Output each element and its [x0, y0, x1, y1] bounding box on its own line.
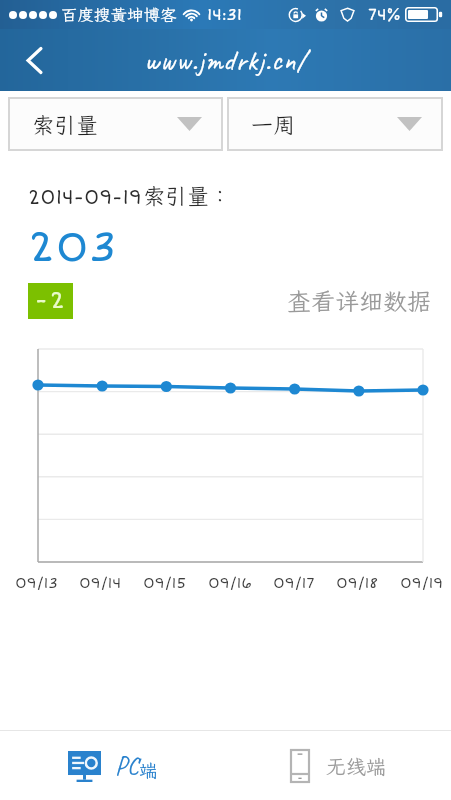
button[interactable]: -2: [28, 283, 73, 319]
staticText: 74%: [368, 5, 401, 25]
staticText: 无线端: [326, 753, 386, 779]
staticText: 09/14: [79, 574, 122, 592]
staticText: 百度搜黄坤博客: [61, 4, 177, 26]
staticText: 查看详细数据: [287, 285, 431, 317]
staticText: 09/13: [15, 574, 58, 592]
button[interactable]: 无线端: [225, 731, 451, 800]
staticText: 09/15: [143, 574, 187, 592]
staticText: 09/17: [273, 574, 315, 592]
staticText: -2: [35, 286, 67, 316]
button[interactable]: 一周: [227, 97, 443, 151]
button[interactable]: 索引量: [8, 97, 223, 151]
staticText: 索引量: [32, 110, 99, 139]
staticText: 端: [139, 758, 157, 782]
staticText: 一周: [251, 110, 296, 139]
staticText: PC: [115, 750, 139, 782]
staticText: 09/16: [208, 574, 252, 592]
staticText: 索引量：: [143, 181, 232, 210]
button[interactable]: PC: [0, 731, 225, 800]
staticText: 2014-09-19: [28, 186, 142, 210]
staticText: 09/19: [400, 574, 444, 592]
staticText: www.jmdrkj.cn/: [144, 42, 307, 79]
staticText: 09/18: [336, 574, 379, 592]
staticText: 203: [28, 221, 117, 274]
button[interactable]: Back: [10, 36, 58, 84]
button[interactable]: 查看详细数据: [287, 285, 431, 317]
staticText: 14:31: [207, 5, 242, 25]
